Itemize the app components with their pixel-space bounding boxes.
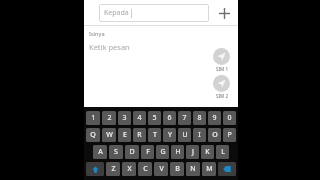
staticText: V (159, 164, 164, 174)
button[interactable]: F (141, 145, 154, 159)
button[interactable]: 9 (208, 111, 221, 125)
staticText: 2 (107, 113, 112, 123)
button[interactable]: N (186, 162, 200, 176)
button[interactable]: 2 (102, 111, 116, 125)
staticText: Q (90, 130, 96, 140)
button[interactable]: J (186, 145, 199, 159)
button[interactable]: 4 (133, 111, 146, 125)
button[interactable]: 5 (148, 111, 161, 125)
button[interactable]: G (156, 145, 169, 159)
button[interactable]: D (125, 145, 139, 159)
button[interactable]: A (93, 145, 107, 159)
button[interactable]: 1 (86, 111, 100, 125)
staticText: J (192, 147, 194, 157)
button[interactable]: I (193, 128, 206, 142)
button[interactable]: R (133, 128, 146, 142)
staticText: F (146, 147, 150, 157)
button[interactable]: 0 (223, 111, 236, 125)
button[interactable]: Backspace (218, 162, 236, 176)
button[interactable]: B (170, 162, 184, 176)
staticText: D (129, 147, 135, 157)
staticText: R (137, 130, 142, 140)
button[interactable]: L (216, 145, 229, 159)
staticText: T (153, 130, 157, 140)
staticText: S (114, 147, 118, 157)
staticText: X (127, 164, 132, 174)
staticText: E (123, 130, 127, 140)
staticText: Kepada (104, 8, 129, 18)
button[interactable]: Y (163, 128, 176, 142)
staticText: Ketik pesan (89, 42, 130, 52)
button[interactable]: Add recipient (213, 2, 235, 24)
staticText: 1 (91, 113, 96, 123)
staticText: U (182, 130, 188, 140)
staticText: A (98, 147, 103, 157)
button[interactable]: X (122, 162, 136, 176)
staticText: 6 (167, 113, 172, 123)
button[interactable]: H (171, 145, 184, 159)
button[interactable]: W (102, 128, 116, 142)
button[interactable]: P (223, 128, 236, 142)
staticText: SIM 1 (216, 66, 228, 72)
staticText: Z (111, 164, 116, 174)
staticText: M (206, 164, 213, 174)
button[interactable]: Q (86, 128, 100, 142)
staticText: L (221, 147, 225, 157)
button[interactable]: M (202, 162, 216, 176)
button[interactable]: Send with SIM 2 (213, 75, 230, 99)
staticText: Y (168, 130, 172, 140)
staticText: G (160, 147, 166, 157)
button[interactable]: Send with SIM 1 (213, 48, 230, 72)
button[interactable]: V (154, 162, 168, 176)
staticText: 5 (152, 113, 157, 123)
staticText: H (175, 147, 181, 157)
button[interactable]: U (178, 128, 191, 142)
button[interactable]: 3 (118, 111, 131, 125)
button[interactable]: Ketik pesan (84, 40, 238, 54)
staticText: K (205, 147, 210, 157)
staticText: 0 (227, 113, 232, 123)
button[interactable]: Shift (86, 162, 104, 176)
staticText: 8 (197, 113, 202, 123)
button[interactable]: O (208, 128, 221, 142)
staticText: SIM 2 (216, 93, 228, 99)
staticText: B (175, 164, 180, 174)
staticText: Isinya (89, 30, 105, 37)
staticText: C (143, 164, 148, 174)
staticText: N (190, 164, 196, 174)
button[interactable]: Kepada (99, 4, 209, 22)
button[interactable]: E (118, 128, 131, 142)
button[interactable]: T (148, 128, 161, 142)
button[interactable]: K (201, 145, 214, 159)
staticText: O (212, 130, 218, 140)
button[interactable]: Z (106, 162, 120, 176)
staticText: P (227, 130, 232, 140)
button[interactable]: 7 (178, 111, 191, 125)
staticText: W (106, 130, 113, 140)
staticText: I (198, 130, 201, 140)
button[interactable]: C (138, 162, 152, 176)
staticText: 3 (122, 113, 127, 123)
button[interactable]: S (109, 145, 123, 159)
staticText: 7 (182, 113, 187, 123)
button[interactable]: 6 (163, 111, 176, 125)
button[interactable]: 8 (193, 111, 206, 125)
staticText: 4 (137, 113, 142, 123)
staticText: 9 (212, 113, 217, 123)
